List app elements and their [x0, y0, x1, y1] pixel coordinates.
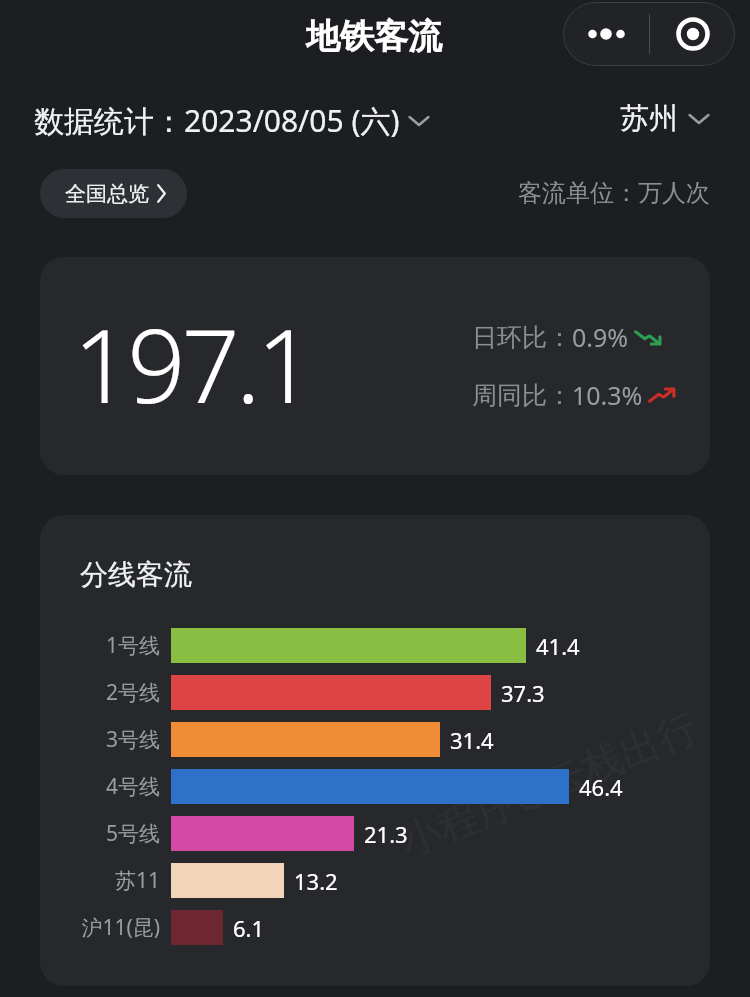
- staticText: 地铁客流: [306, 15, 442, 58]
- staticText: 2号线: [105, 678, 160, 707]
- staticText: 客流单位：万人次: [518, 178, 710, 208]
- button[interactable]: 苏11: [40, 857, 710, 904]
- staticText: 小程序@云栈出行: [392, 699, 705, 868]
- button[interactable]: 4号线: [40, 763, 710, 810]
- staticText: 3号线: [105, 725, 160, 754]
- staticText: 197.1: [73, 294, 311, 433]
- staticText: 全国总览: [65, 181, 149, 207]
- button[interactable]: 1号线: [40, 622, 710, 669]
- staticText: 6.1: [233, 913, 265, 943]
- staticText: 5号线: [105, 819, 160, 848]
- button[interactable]: 数据统计：2023/08/05 (六): [34, 100, 431, 141]
- button[interactable]: 3号线: [40, 716, 710, 763]
- button[interactable]: 197.1: [40, 257, 710, 475]
- staticText: 21.3: [364, 819, 408, 849]
- button[interactable]: 2号线: [40, 669, 710, 716]
- staticText: 0.9%: [572, 320, 629, 354]
- button[interactable]: Close: [650, 2, 735, 66]
- staticText: 沪11(昆): [81, 913, 160, 942]
- button[interactable]: 沪11(昆): [40, 904, 710, 951]
- staticText: 37.3: [501, 678, 545, 708]
- staticText: 46.4: [579, 772, 623, 802]
- button[interactable]: 全国总览: [40, 169, 187, 218]
- staticText: 苏州: [620, 100, 678, 137]
- staticText: 分线客流: [80, 557, 192, 592]
- staticText: 31.4: [450, 725, 494, 755]
- staticText: 41.4: [536, 631, 580, 661]
- button[interactable]: More options: [563, 2, 649, 66]
- staticText: 13.2: [294, 866, 338, 896]
- button[interactable]: 苏州: [620, 100, 711, 137]
- staticText: 10.3%: [572, 378, 643, 412]
- staticText: 苏11: [114, 866, 160, 895]
- staticText: 1号线: [105, 631, 160, 660]
- staticText: 周同比：: [472, 380, 572, 411]
- staticText: 4号线: [105, 772, 160, 801]
- staticText: 日环比：: [472, 322, 572, 353]
- button[interactable]: 5号线: [40, 810, 710, 857]
- staticText: 数据统计：2023/08/05 (六): [34, 100, 400, 141]
